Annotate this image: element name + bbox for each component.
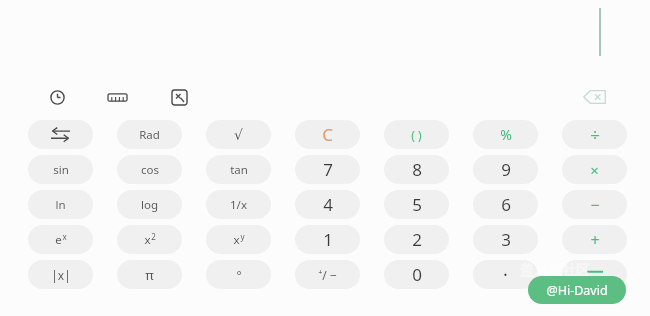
staticText: ÷	[590, 123, 600, 146]
staticText: ·	[503, 262, 508, 287]
staticText: 2	[412, 228, 422, 251]
button[interactable]: √	[206, 120, 271, 149]
staticText: cos	[141, 162, 159, 178]
staticText: log	[141, 197, 158, 213]
staticText: 盖乐世社区	[520, 262, 590, 280]
button[interactable]: 2	[384, 225, 449, 254]
staticText: ln	[55, 197, 66, 213]
button[interactable]: ln	[28, 190, 93, 219]
staticText: y	[240, 231, 245, 242]
staticText: 3	[501, 228, 511, 251]
staticText: 7	[323, 158, 333, 181]
button[interactable]: °	[206, 260, 271, 289]
staticText: ( )	[411, 127, 422, 143]
staticText: x	[144, 232, 151, 248]
button[interactable]: Backspace	[576, 84, 612, 110]
button[interactable]: ·	[473, 260, 538, 289]
button[interactable]: Rad	[117, 120, 182, 149]
button[interactable]: %	[473, 120, 538, 149]
button[interactable]: x	[117, 225, 182, 254]
button[interactable]: Equals	[562, 260, 627, 289]
button[interactable]: ( )	[384, 120, 449, 149]
staticText: x	[233, 232, 240, 248]
button[interactable]: 3	[473, 225, 538, 254]
staticText: Rad	[139, 127, 160, 143]
button[interactable]: cos	[117, 155, 182, 184]
button[interactable]: π	[117, 260, 182, 289]
staticText: |x|	[51, 267, 71, 283]
button[interactable]: ⁺/ −	[295, 260, 360, 289]
button[interactable]: 5	[384, 190, 449, 219]
button[interactable]: Swap	[28, 120, 93, 149]
button[interactable]: 8	[384, 155, 449, 184]
staticText: +	[590, 229, 600, 251]
staticText: 0	[412, 263, 422, 286]
button[interactable]: sin	[28, 155, 93, 184]
staticText: x	[62, 231, 67, 242]
button[interactable]: 6	[473, 190, 538, 219]
staticText: 5	[412, 193, 422, 216]
button[interactable]: +	[562, 225, 627, 254]
button[interactable]: x	[206, 225, 271, 254]
staticText: 4	[323, 193, 333, 216]
staticText: ×	[590, 160, 599, 180]
button[interactable]: |x|	[28, 260, 93, 289]
staticText: ⁺/ −	[318, 267, 337, 283]
staticText: 9	[501, 158, 511, 181]
staticText: π	[145, 266, 154, 284]
staticText: 2	[151, 231, 156, 242]
button[interactable]: History	[44, 84, 70, 110]
staticText: %	[500, 125, 512, 144]
button[interactable]: ×	[562, 155, 627, 184]
staticText: √	[234, 127, 243, 143]
staticText: e	[55, 232, 62, 248]
staticText: 8	[412, 158, 422, 181]
staticText: °	[236, 267, 242, 283]
staticText: tan	[230, 162, 248, 178]
button[interactable]: e	[28, 225, 93, 254]
button[interactable]: log	[117, 190, 182, 219]
button[interactable]: tan	[206, 155, 271, 184]
staticText: sin	[53, 162, 69, 178]
button[interactable]: 4	[295, 190, 360, 219]
staticText: 6	[501, 193, 511, 216]
button[interactable]: ÷	[562, 120, 627, 149]
button[interactable]: 1	[295, 225, 360, 254]
button[interactable]: 0	[384, 260, 449, 289]
button[interactable]: −	[562, 190, 627, 219]
button[interactable]: Functions	[166, 84, 192, 110]
button[interactable]: 9	[473, 155, 538, 184]
staticText: 1/x	[230, 197, 247, 213]
button[interactable]: 1/x	[206, 190, 271, 219]
button[interactable]: 7	[295, 155, 360, 184]
button[interactable]: C	[295, 120, 360, 149]
button[interactable]: Unit converter	[104, 84, 130, 110]
staticText: C	[322, 123, 333, 146]
staticText: −	[590, 194, 600, 216]
staticText: @Hi-David	[546, 282, 608, 299]
staticText: 1	[323, 228, 333, 251]
